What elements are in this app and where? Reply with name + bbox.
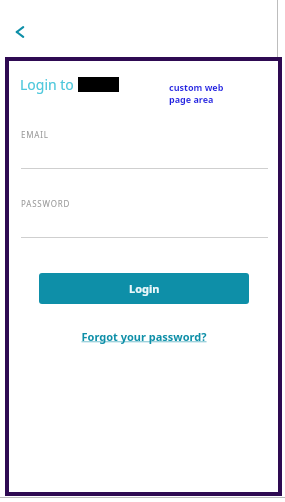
staticText: page area xyxy=(169,93,214,105)
staticText: Login to xyxy=(20,75,78,94)
button[interactable]: EMAIL xyxy=(9,129,278,169)
staticText: PASSWORD xyxy=(21,198,71,209)
staticText: Login xyxy=(129,281,160,296)
staticText: custom web xyxy=(169,81,224,93)
button[interactable]: Back xyxy=(6,18,34,46)
button[interactable]: Login xyxy=(39,273,249,304)
staticText: Forgot your password? xyxy=(81,329,207,344)
staticText: EMAIL xyxy=(21,129,49,140)
button[interactable]: PASSWORD xyxy=(9,198,278,238)
button[interactable]: Forgot your password? xyxy=(77,327,211,346)
